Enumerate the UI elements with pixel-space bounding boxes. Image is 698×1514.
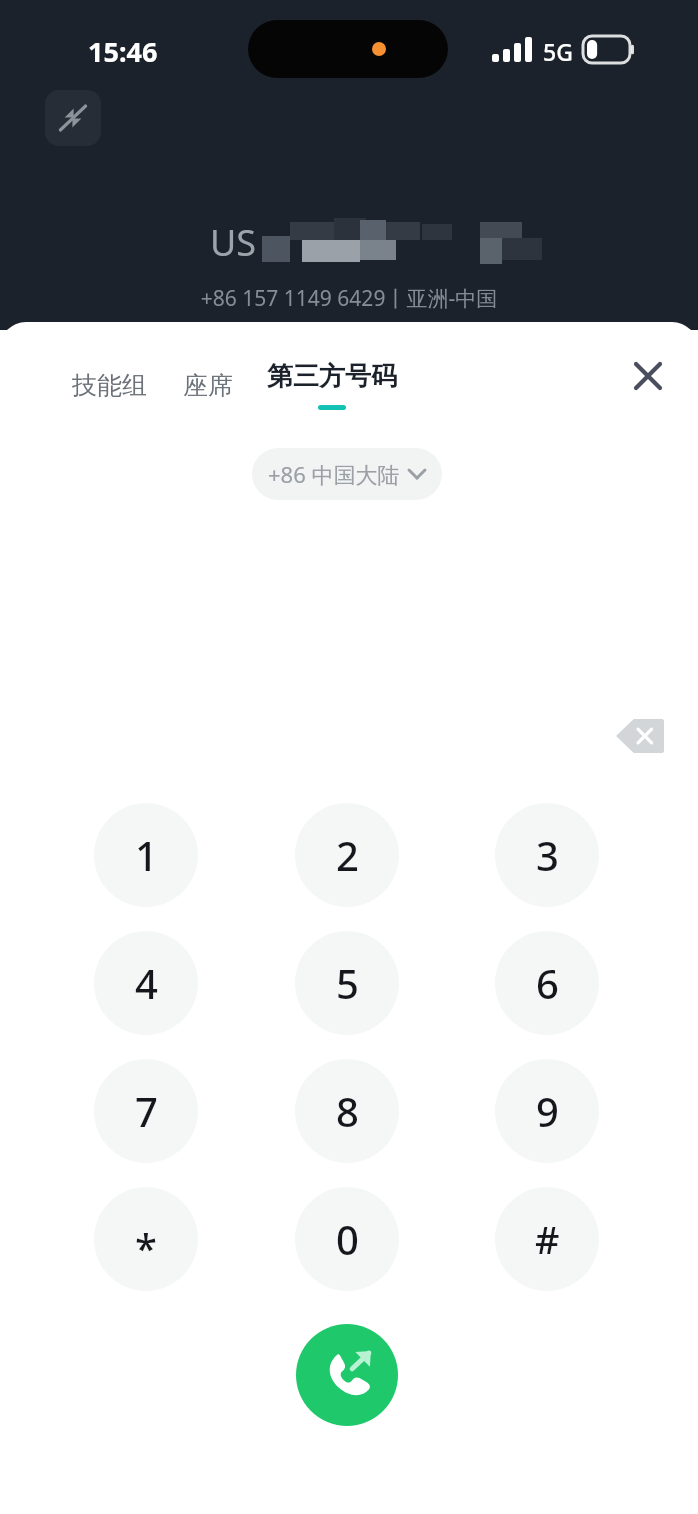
staticText: # (535, 1213, 560, 1265)
button[interactable]: 1 (94, 803, 198, 907)
button[interactable]: Minimize (45, 90, 101, 146)
staticText: US (210, 218, 257, 267)
staticText: * (135, 1220, 157, 1274)
button[interactable]: 6 (495, 931, 599, 1035)
button[interactable]: 7 (94, 1059, 198, 1163)
staticText: 8 (336, 1084, 359, 1138)
staticText: 3 (536, 828, 559, 882)
button[interactable]: +86 中国大陆 (252, 448, 442, 500)
staticText: 0 (336, 1212, 359, 1266)
button[interactable]: 座席 (181, 370, 235, 401)
button[interactable]: 2 (295, 803, 399, 907)
button[interactable]: 技能组 (70, 370, 149, 401)
button[interactable]: 3 (495, 803, 599, 907)
button[interactable]: # (495, 1187, 599, 1291)
button[interactable]: 4 (94, 931, 198, 1035)
staticText: 第三方号码 (267, 360, 397, 393)
button[interactable]: 0 (295, 1187, 399, 1291)
staticText: 1 (135, 828, 158, 882)
staticText: 2 (336, 828, 359, 882)
button[interactable]: 9 (495, 1059, 599, 1163)
button[interactable]: * (94, 1187, 198, 1291)
staticText: 15:46 (88, 33, 158, 70)
button[interactable]: 8 (295, 1059, 399, 1163)
staticText: 4 (135, 956, 158, 1010)
button[interactable]: 5 (295, 931, 399, 1035)
staticText: +86 157 1149 6429丨亚洲-中国 (0, 284, 698, 313)
staticText: 9 (536, 1084, 559, 1138)
staticText: 7 (135, 1084, 158, 1138)
staticText: 6 (536, 956, 559, 1010)
staticText: 5 (336, 956, 359, 1010)
staticText: +86 中国大陆 (268, 459, 400, 489)
button[interactable]: Backspace (612, 715, 668, 757)
button[interactable]: Close (624, 352, 672, 400)
button[interactable]: Call (296, 1324, 398, 1426)
staticText: 技能组 (72, 370, 147, 401)
staticText: 5G (543, 36, 573, 67)
staticText: 座席 (183, 370, 233, 401)
button[interactable]: 第三方号码 (267, 360, 397, 410)
